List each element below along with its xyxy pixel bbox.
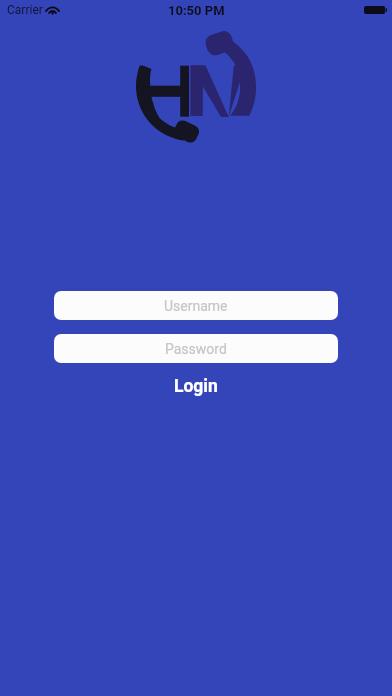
other: Wi-Fi bbox=[47, 6, 58, 15]
button[interactable]: Username bbox=[54, 291, 338, 320]
button[interactable]: Login bbox=[156, 372, 236, 401]
staticText: Login bbox=[174, 376, 218, 397]
button[interactable]: Password bbox=[54, 334, 338, 363]
other: Battery bbox=[364, 6, 387, 14]
staticText: Username bbox=[164, 298, 228, 314]
staticText: Carrier bbox=[7, 3, 43, 17]
staticText: 10:50 PM bbox=[168, 3, 225, 18]
staticText: Password bbox=[165, 341, 227, 357]
